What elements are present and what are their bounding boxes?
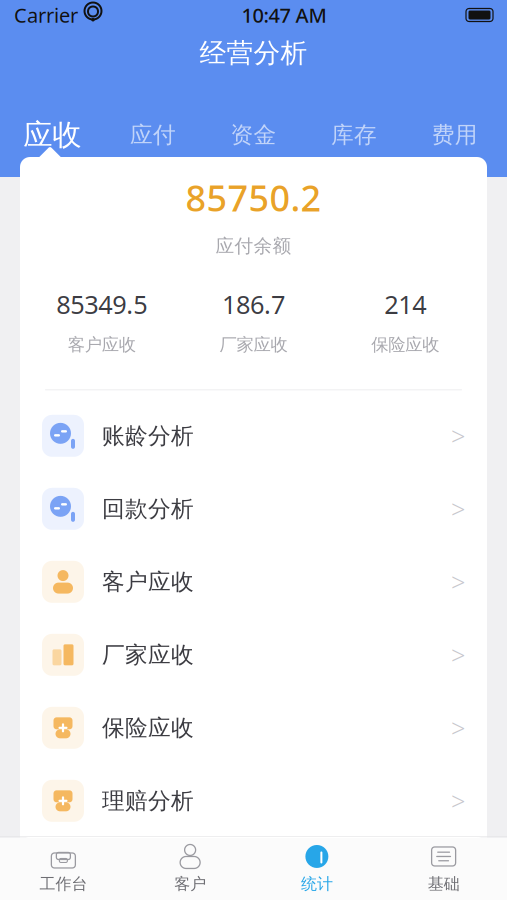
staticText: > [451, 711, 465, 745]
staticText: 客户应收 [68, 334, 136, 355]
button[interactable]: 统计 [253, 844, 380, 894]
staticText: 库存 [331, 121, 377, 149]
button[interactable]: 厂家应收 [20, 618, 487, 691]
staticText: 客户应收 [102, 568, 194, 596]
staticText: 186.7 [222, 287, 285, 321]
button[interactable]: 回款分析 [20, 472, 487, 545]
staticText: 理赔分析 [102, 787, 194, 815]
staticText: > [451, 565, 465, 599]
staticText: > [451, 638, 465, 672]
staticText: 应付 [130, 121, 176, 149]
staticText: 费用 [432, 121, 478, 149]
button[interactable]: 理赔分析 [20, 764, 487, 837]
button[interactable]: 应收 [2, 117, 103, 153]
staticText: 10:47 AM [241, 2, 326, 28]
staticText: Carrier [14, 2, 78, 28]
staticText: 厂家应收 [219, 334, 287, 355]
button[interactable]: 保险应收 [20, 691, 487, 764]
staticText: 账龄分析 [102, 422, 194, 450]
button[interactable]: 客户应收 [20, 545, 487, 618]
staticText: 厂家应收 [102, 641, 194, 669]
staticText: 85349.5 [56, 287, 147, 321]
button[interactable]: 基础 [380, 844, 507, 894]
staticText: 工作台 [39, 874, 87, 894]
staticText: > [451, 784, 465, 818]
button[interactable]: 客户 [127, 844, 254, 894]
staticText: 资金 [230, 121, 276, 149]
staticText: > [451, 492, 465, 526]
staticText: 214 [384, 287, 426, 321]
button[interactable]: 工作台 [0, 844, 127, 894]
button[interactable]: 账龄分析 [20, 399, 487, 472]
staticText: 客户 [174, 874, 206, 894]
staticText: 回款分析 [102, 495, 194, 523]
staticText: 85750.2 [185, 174, 321, 221]
staticText: 应收 [23, 117, 81, 153]
staticText: 保险应收 [102, 714, 194, 742]
staticText: 经营分析 [199, 37, 307, 69]
button[interactable]: 费用 [404, 117, 505, 153]
staticText: 保险应收 [371, 334, 439, 355]
button[interactable]: 库存 [304, 117, 404, 153]
staticText: 应付余额 [215, 234, 291, 257]
button[interactable]: 应付 [103, 117, 203, 153]
staticText: 基础 [428, 874, 460, 894]
staticText: 统计 [301, 874, 333, 894]
button[interactable]: 资金 [203, 117, 304, 153]
staticText: > [451, 419, 465, 453]
